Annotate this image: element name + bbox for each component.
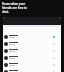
button[interactable]: [3, 68, 61, 72]
button[interactable]: [3, 54, 61, 61]
staticText: Know when your friends are free to chat.: [2, 2, 27, 14]
button[interactable]: [3, 61, 61, 68]
button[interactable]: [3, 33, 61, 40]
button[interactable]: [3, 40, 61, 47]
button[interactable]: [3, 47, 61, 54]
